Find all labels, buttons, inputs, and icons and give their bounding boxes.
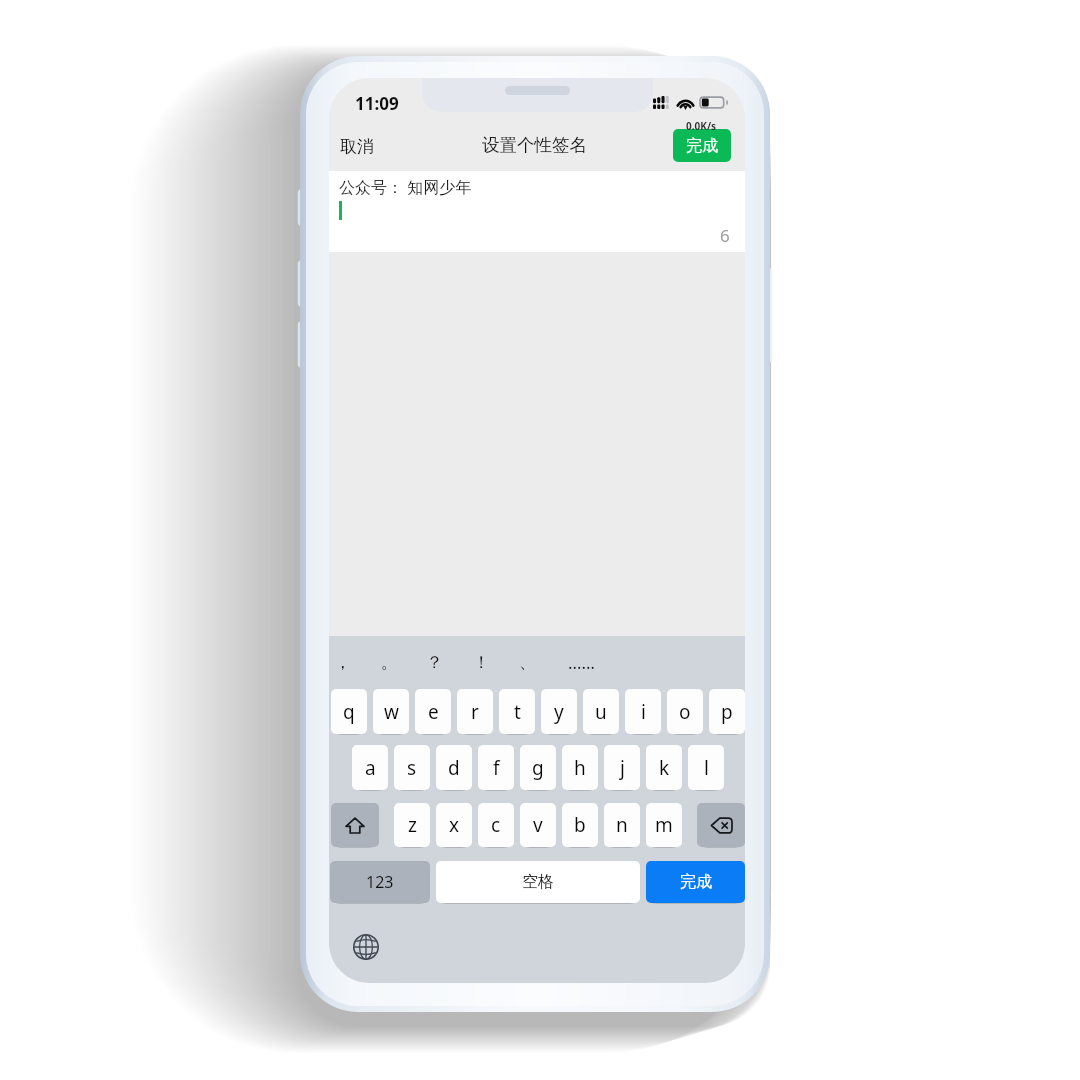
button[interactable]: b [562, 803, 598, 847]
button[interactable]: u [583, 689, 619, 734]
staticText: x [449, 812, 460, 838]
staticText: k [659, 755, 670, 781]
staticText: p [721, 699, 733, 725]
button[interactable]: q [331, 689, 367, 734]
staticText: 11:09 [355, 92, 399, 115]
staticText: 。 [381, 652, 398, 673]
button[interactable]: d [436, 745, 472, 790]
button[interactable]: ？ [411, 636, 457, 689]
button[interactable]: p [709, 689, 745, 734]
button[interactable]: 空格 [436, 861, 640, 903]
button[interactable]: f [478, 745, 514, 790]
staticText: ！ [473, 652, 490, 673]
staticText: 设置个性签名 [482, 134, 587, 156]
staticText: n [616, 812, 628, 838]
button[interactable]: j [604, 745, 640, 790]
staticText: w [384, 699, 399, 725]
staticText: b [574, 812, 586, 838]
staticText: 空格 [522, 872, 554, 892]
staticText: h [574, 755, 586, 781]
button[interactable]: 123 [330, 861, 430, 903]
staticText: a [365, 755, 376, 781]
staticText: e [428, 699, 439, 725]
button[interactable]: 完成 [646, 861, 745, 903]
staticText: 6 [720, 224, 730, 247]
button[interactable]: w [373, 689, 409, 734]
button[interactable]: i [625, 689, 661, 734]
staticText: ？ [426, 652, 443, 673]
staticText: 完成 [680, 872, 712, 892]
staticText: v [533, 812, 543, 838]
staticText: 取消 [340, 136, 374, 157]
button[interactable]: …… [558, 636, 604, 689]
staticText: r [471, 699, 479, 725]
button[interactable]: Switch input language [353, 934, 379, 960]
staticText: l [704, 755, 709, 781]
staticText: ， [334, 652, 351, 673]
button[interactable]: o [667, 689, 703, 734]
button[interactable]: 完成 [673, 129, 731, 162]
button[interactable]: m [646, 803, 682, 847]
staticText: t [514, 699, 521, 725]
staticText: g [532, 755, 544, 781]
staticText: 0.0K/s [686, 119, 717, 133]
staticText: d [448, 755, 460, 781]
button[interactable]: e [415, 689, 451, 734]
button[interactable]: h [562, 745, 598, 790]
button[interactable]: l [688, 745, 724, 790]
staticText: m [655, 812, 673, 838]
button[interactable]: t [499, 689, 535, 734]
button[interactable]: g [520, 745, 556, 790]
button[interactable]: n [604, 803, 640, 847]
staticText: y [554, 699, 564, 725]
staticText: c [491, 812, 501, 838]
staticText: q [343, 699, 355, 725]
staticText: 完成 [686, 136, 718, 156]
button[interactable]: c [478, 803, 514, 847]
staticText: f [493, 755, 500, 781]
staticText: u [595, 699, 607, 725]
staticText: o [679, 699, 691, 725]
button[interactable]: v [520, 803, 556, 847]
button[interactable]: Backspace [697, 803, 745, 847]
button[interactable]: 取消 [329, 127, 388, 166]
staticText: s [407, 755, 417, 781]
staticText: j [620, 755, 625, 781]
button[interactable]: k [646, 745, 682, 790]
button[interactable]: 。 [366, 636, 412, 689]
button[interactable]: ！ [458, 636, 504, 689]
staticText: 123 [366, 871, 394, 893]
button[interactable]: 、 [504, 636, 550, 689]
button[interactable]: Shift [331, 803, 379, 847]
staticText: i [641, 699, 646, 725]
button[interactable]: ， [329, 636, 365, 689]
button[interactable]: z [394, 803, 430, 847]
staticText: 、 [519, 652, 536, 673]
button[interactable]: x [436, 803, 472, 847]
button[interactable]: a [352, 745, 388, 790]
button[interactable]: s [394, 745, 430, 790]
button[interactable]: r [457, 689, 493, 734]
staticText: …… [568, 651, 595, 674]
staticText: 公众号： 知网少年 [339, 176, 472, 198]
button[interactable]: y [541, 689, 577, 734]
staticText: z [408, 812, 417, 838]
